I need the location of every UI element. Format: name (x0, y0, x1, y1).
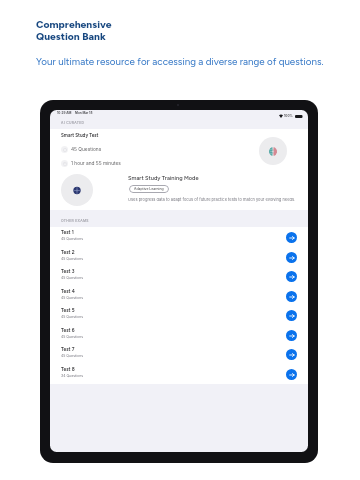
other: Open Test 3 (286, 271, 297, 282)
staticText: Test 4 (61, 288, 75, 294)
other: Open Test 7 (286, 349, 297, 360)
staticText: Test 5 (61, 307, 75, 313)
button[interactable]: Test 7 (50, 344, 308, 364)
staticText: AI CURATED (61, 121, 85, 125)
other: Open Test 6 (286, 330, 297, 341)
staticText: 100% (284, 114, 293, 118)
staticText: Test 3 (61, 268, 75, 274)
staticText: 34 Questions (61, 374, 84, 378)
staticText: 10:29 AM (57, 111, 72, 115)
staticText: Smart Study Training Mode (128, 175, 199, 182)
staticText: Smart Study Test (61, 133, 99, 139)
staticText: OTHER EXAMS (61, 219, 89, 223)
staticText: 45 Questions (61, 276, 84, 280)
button[interactable]: Adaptive Learning (134, 187, 164, 191)
button[interactable]: Test 6 (50, 325, 308, 345)
staticText: 45 Questions (61, 296, 84, 300)
other: Open Test 1 (286, 232, 297, 243)
other: Open Test 8 (286, 369, 297, 380)
staticText: 45 Questions (61, 237, 84, 241)
button[interactable]: Test 3 (50, 266, 308, 286)
other: Open Test 2 (286, 252, 297, 263)
staticText: Comprehensive Question Bank (36, 18, 112, 43)
staticText: Test 2 (61, 249, 75, 255)
staticText: Test 1 (61, 229, 74, 235)
staticText: 45 Questions (61, 315, 84, 319)
other: Open Test 4 (286, 291, 297, 302)
staticText: 45 Questions (61, 257, 84, 261)
staticText: Test 8 (61, 366, 75, 372)
staticText: Mon Mar 18 (75, 111, 93, 115)
staticText: 45 Questions (61, 335, 84, 339)
staticText: 1 hour and 55 minutes (71, 160, 121, 166)
button[interactable]: Test 1 (50, 227, 308, 247)
button[interactable]: Test 8 (50, 364, 308, 384)
staticText: 45 Questions (71, 146, 102, 152)
staticText: 45 Questions (61, 354, 84, 358)
staticText: Test 7 (61, 346, 75, 352)
staticText: Uses progress data to adapt focus of fut… (128, 197, 303, 202)
staticText: Test 6 (61, 327, 75, 333)
staticText: Adaptive Learning (134, 187, 164, 191)
button[interactable]: Test 5 (50, 305, 308, 325)
staticText: Your ultimate resource for accessing a d… (36, 56, 324, 68)
button[interactable]: Test 2 (50, 247, 308, 267)
button[interactable]: Test 4 (50, 286, 308, 306)
other: Open Test 5 (286, 310, 297, 321)
